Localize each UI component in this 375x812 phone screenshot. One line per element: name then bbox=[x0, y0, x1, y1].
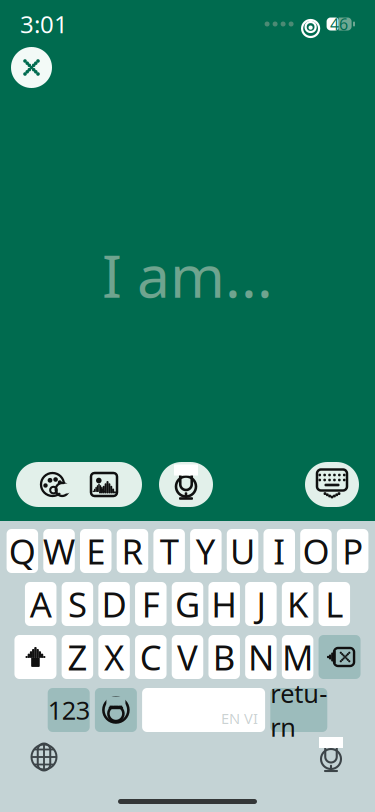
staticText: E bbox=[86, 528, 105, 574]
button[interactable]: Dictate bbox=[302, 736, 360, 778]
staticText: B bbox=[213, 634, 236, 680]
staticText: R bbox=[121, 528, 143, 574]
button[interactable]: M bbox=[282, 635, 313, 679]
button[interactable]: space bbox=[142, 688, 265, 732]
staticText: F bbox=[142, 581, 160, 627]
button[interactable]: A bbox=[25, 582, 56, 626]
staticText: L bbox=[325, 581, 343, 627]
staticText: Q bbox=[9, 528, 36, 574]
staticText: EN VI bbox=[221, 708, 258, 728]
button[interactable]: Shift bbox=[14, 635, 56, 679]
staticText: C bbox=[140, 634, 162, 680]
button[interactable]: Background and photo bbox=[16, 462, 142, 507]
button[interactable]: G bbox=[172, 582, 203, 626]
staticText: S bbox=[68, 581, 87, 627]
staticText: G bbox=[175, 581, 200, 627]
button[interactable]: L bbox=[318, 582, 350, 626]
button[interactable]: E bbox=[80, 529, 111, 573]
button[interactable]: Emoji bbox=[95, 688, 137, 732]
staticText: A bbox=[30, 581, 52, 627]
button[interactable]: T bbox=[153, 529, 185, 573]
staticText: 123 bbox=[48, 693, 90, 727]
staticText: Y bbox=[196, 528, 216, 574]
button[interactable]: U bbox=[227, 529, 258, 573]
staticText: 46 bbox=[330, 13, 348, 35]
button[interactable]: B bbox=[208, 635, 240, 679]
staticText: N bbox=[248, 634, 274, 680]
button[interactable]: Z bbox=[62, 635, 93, 679]
button[interactable]: D bbox=[98, 582, 130, 626]
button[interactable]: Y bbox=[190, 529, 222, 573]
button[interactable]: K bbox=[282, 582, 313, 626]
button[interactable]: N bbox=[245, 635, 277, 679]
button[interactable]: P bbox=[337, 529, 368, 573]
button[interactable]: Q bbox=[7, 529, 38, 573]
staticText: return bbox=[270, 676, 327, 744]
button[interactable]: C bbox=[135, 635, 167, 679]
staticText: O bbox=[302, 528, 329, 574]
button[interactable]: J bbox=[245, 582, 277, 626]
staticText: H bbox=[211, 581, 237, 627]
staticText: X bbox=[104, 634, 124, 680]
button[interactable]: V bbox=[172, 635, 203, 679]
button[interactable]: H bbox=[208, 582, 240, 626]
staticText: I bbox=[273, 528, 285, 574]
button[interactable]: W bbox=[43, 529, 75, 573]
staticText: V bbox=[177, 634, 198, 680]
button[interactable]: Voice message bbox=[159, 462, 213, 507]
button[interactable]: Close bbox=[11, 47, 52, 88]
button[interactable]: 123 bbox=[48, 688, 90, 732]
staticText: M bbox=[282, 634, 313, 680]
staticText: T bbox=[160, 528, 179, 574]
button[interactable]: Delete bbox=[318, 635, 360, 679]
staticText: K bbox=[287, 581, 308, 627]
staticText: U bbox=[230, 528, 255, 574]
staticText: I am... bbox=[102, 236, 273, 314]
staticText: P bbox=[342, 528, 363, 574]
staticText: W bbox=[43, 528, 75, 574]
staticText: D bbox=[102, 581, 127, 627]
button[interactable]: return bbox=[270, 688, 327, 732]
staticText: J bbox=[256, 581, 265, 627]
button[interactable]: S bbox=[62, 582, 93, 626]
button[interactable]: F bbox=[135, 582, 167, 626]
button[interactable]: Hide keyboard bbox=[305, 462, 359, 507]
button[interactable]: X bbox=[98, 635, 130, 679]
staticText: 3:01 bbox=[20, 8, 68, 40]
staticText: Z bbox=[67, 634, 87, 680]
button[interactable]: R bbox=[117, 529, 148, 573]
button[interactable]: O bbox=[300, 529, 332, 573]
button[interactable]: I bbox=[263, 529, 295, 573]
button[interactable]: Next keyboard bbox=[15, 736, 73, 778]
